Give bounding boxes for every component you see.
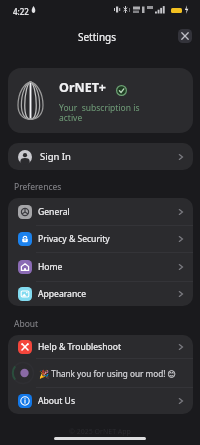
staticText: General	[38, 206, 70, 218]
staticText: Your subscription is active	[59, 102, 141, 123]
button[interactable]: OrNET+	[8, 68, 193, 133]
button[interactable]: About Us	[8, 388, 193, 414]
staticText: About	[14, 318, 39, 330]
button[interactable]: Appearance	[8, 282, 193, 306]
staticText: Help & Troubleshoot	[38, 341, 121, 353]
button[interactable]: Home	[8, 253, 193, 281]
staticText: Appearance	[38, 288, 87, 300]
staticText: Settings	[0, 30, 197, 44]
staticText: 4:22	[13, 6, 29, 17]
staticText: Privacy & Security	[38, 233, 110, 245]
staticText: Home	[38, 261, 63, 273]
staticText: Preferences	[14, 181, 62, 193]
staticText: OrNET+	[59, 79, 107, 96]
staticText: Sign In	[40, 150, 71, 163]
button[interactable]: General	[8, 198, 193, 225]
staticText: 🎉 Thank you for using our mod! 😊	[39, 368, 177, 379]
button[interactable]: Privacy & Security	[8, 226, 193, 252]
staticText: About Us	[38, 395, 76, 407]
button[interactable]: Close	[178, 29, 192, 43]
button[interactable]: Help & Troubleshoot	[8, 335, 193, 358]
button[interactable]: Sign In	[8, 143, 193, 170]
